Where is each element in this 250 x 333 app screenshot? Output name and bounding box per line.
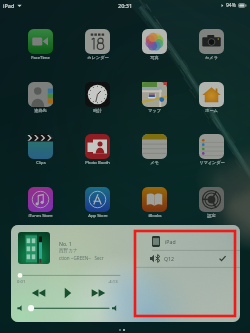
- button[interactable]: App Store: [74, 187, 121, 219]
- staticText: カレンダー: [87, 55, 109, 60]
- staticText: -4:13: [108, 279, 118, 285]
- button[interactable]: 時計: [74, 82, 121, 113]
- staticText: FaceTime: [31, 55, 50, 61]
- button[interactable]: カメラ: [188, 29, 235, 60]
- button[interactable]: Next track: [89, 286, 107, 300]
- button[interactable]: メモ: [131, 134, 178, 165]
- staticText: 写真: [150, 55, 159, 60]
- staticText: メモ: [150, 160, 159, 165]
- button[interactable]: 設定: [188, 187, 235, 218]
- staticText: マップ: [148, 108, 161, 113]
- staticText: 0:01: [17, 279, 26, 285]
- button[interactable]: 連絡先: [17, 82, 64, 113]
- staticText: 西野カナ: [59, 248, 78, 254]
- button[interactable]: iPad: [135, 232, 240, 250]
- button[interactable]: Photo Booth: [74, 134, 121, 166]
- staticText: App Store: [88, 213, 108, 219]
- button[interactable]: Q12: [135, 249, 240, 267]
- button[interactable]: iBooks: [131, 187, 178, 219]
- staticText: 設定: [207, 213, 216, 218]
- button[interactable]: iTunes Store: [17, 187, 64, 219]
- button[interactable]: Clips: [17, 134, 64, 166]
- staticText: iPad: [3, 2, 15, 9]
- button[interactable]: FaceTime: [17, 29, 64, 61]
- staticText: ction ~GREEN~ Secr: [59, 255, 104, 261]
- staticText: iTunes Store: [28, 213, 53, 219]
- staticText: Photo Booth: [85, 160, 110, 166]
- staticText: リマインダー: [199, 160, 225, 165]
- staticText: Q12: [164, 255, 174, 262]
- button[interactable]: リマインダー: [188, 134, 235, 165]
- button[interactable]: Album art: [18, 232, 50, 264]
- staticText: カメラ: [205, 55, 218, 60]
- staticText: 94%: [226, 2, 236, 9]
- staticText: iBooks: [148, 213, 162, 219]
- staticText: iPad: [165, 238, 176, 245]
- staticText: 連絡先: [34, 108, 47, 113]
- staticText: 時計: [93, 108, 102, 113]
- button[interactable]: Play: [59, 285, 76, 301]
- button[interactable]: Previous track: [30, 286, 48, 300]
- staticText: No. 1: [59, 240, 72, 247]
- button[interactable]: カレンダー: [74, 29, 121, 60]
- staticText: 20:31: [118, 2, 133, 9]
- button[interactable]: マップ: [131, 82, 178, 113]
- staticText: Clips: [36, 160, 46, 166]
- button[interactable]: 写真: [131, 29, 178, 60]
- button[interactable]: ホーム: [188, 82, 235, 113]
- staticText: ホーム: [205, 108, 218, 113]
